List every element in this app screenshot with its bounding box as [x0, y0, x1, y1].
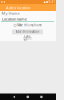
staticText: 9:41	[48, 0, 55, 4]
button[interactable]: Home	[26, 96, 29, 98]
button[interactable]: Recents	[40, 96, 42, 98]
staticText: Add a location	[6, 5, 30, 10]
staticText: My Home	[1, 11, 19, 16]
staticText: Cancel	[24, 35, 31, 42]
button[interactable]: Add this location	[12, 29, 43, 34]
staticText: Add this location	[15, 30, 39, 33]
button[interactable]: Back	[13, 96, 15, 98]
button[interactable]: Cancel	[23, 37, 32, 40]
staticText: Location name	[2, 16, 27, 22]
staticText: Make this my home	[17, 23, 42, 27]
